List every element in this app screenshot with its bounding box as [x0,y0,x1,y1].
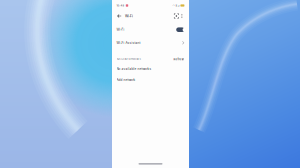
staticText: Wi-Fi [125,14,133,18]
staticText: Refresh [173,58,184,61]
button[interactable]: More options [179,11,184,20]
staticText: 10:48 [117,4,125,7]
staticText: No available networks [117,67,152,71]
button[interactable]: Wi-Fi Assistant [112,37,189,48]
staticText: Wi-Fi Assistant [117,41,141,45]
staticText: ≈⊿ [175,4,179,7]
button[interactable]: Wi-Fi [112,24,189,35]
staticText: AVAILABLE NETWORKS [117,58,141,61]
staticText: Wi-Fi [117,28,125,31]
staticText: Add network [117,78,136,82]
button[interactable]: Back [117,11,123,20]
button[interactable]: Add network [112,74,189,85]
button[interactable]: Add network by QR code [173,11,179,20]
staticText: ◠ [173,4,175,7]
button[interactable]: No available networks [112,63,189,74]
button[interactable]: Refresh [173,58,184,61]
